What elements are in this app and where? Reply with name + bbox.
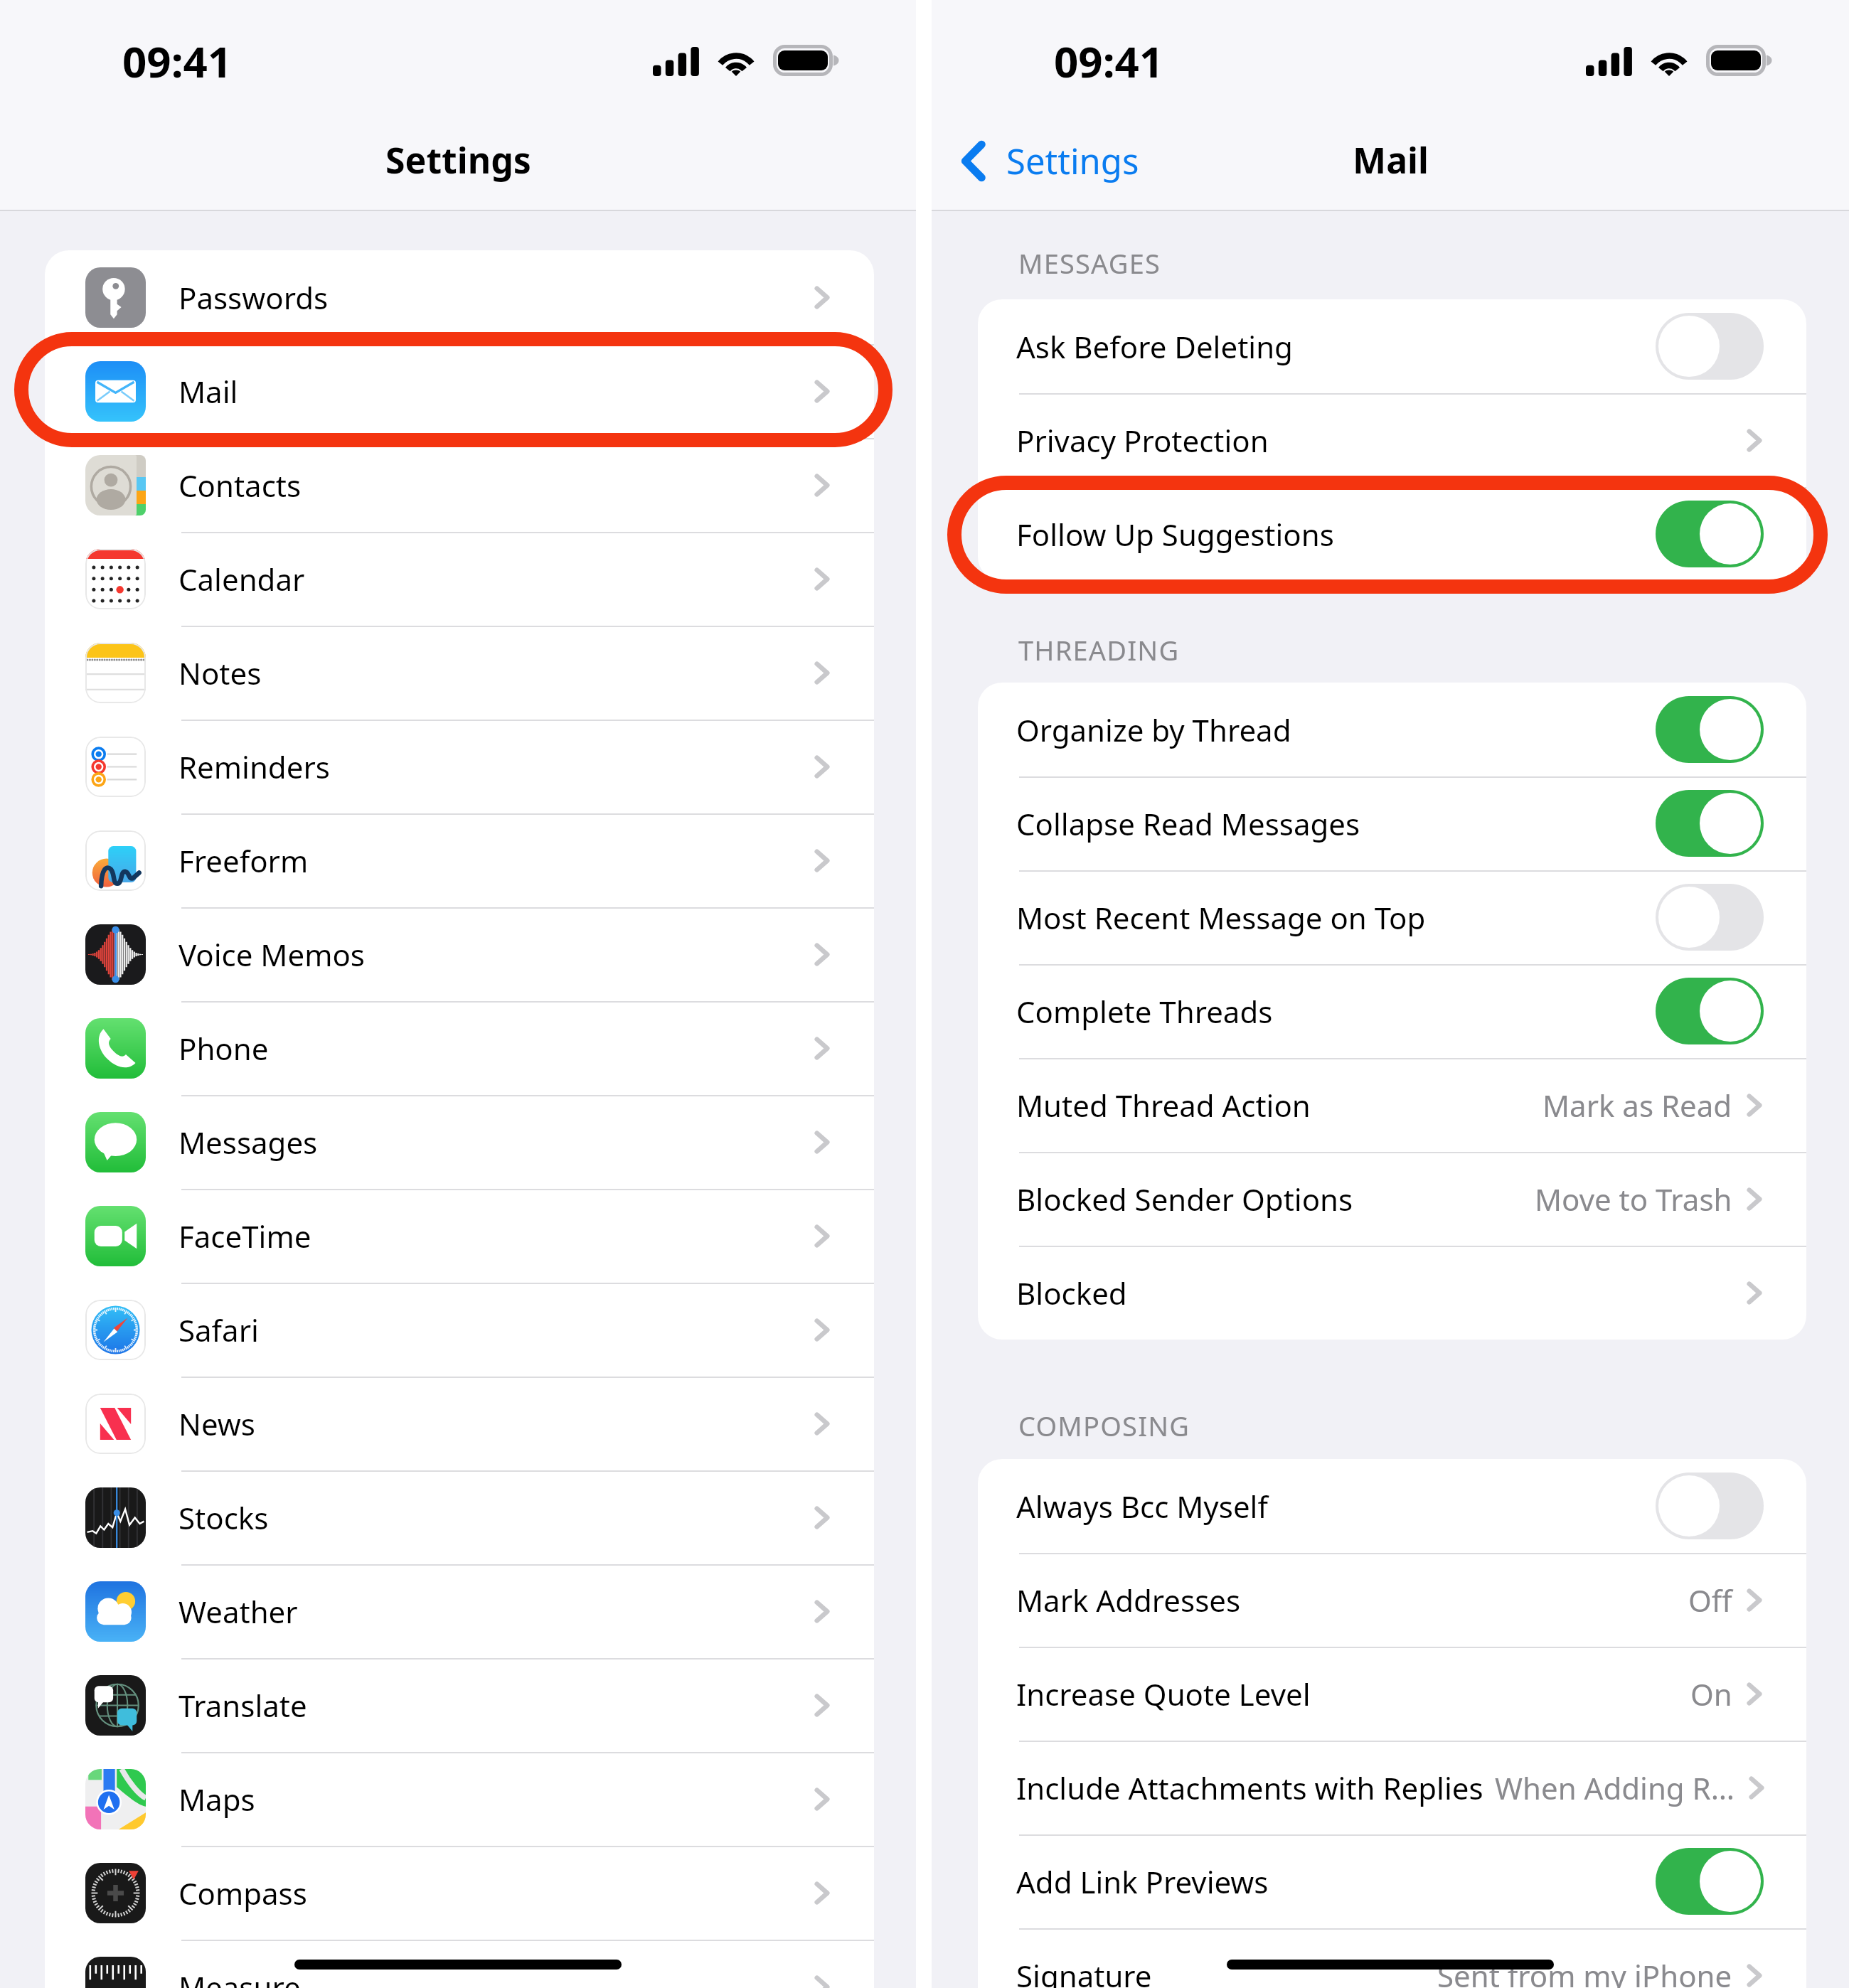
- button[interactable]: Blocked Sender Options: [978, 1152, 1806, 1246]
- staticText: Safari: [178, 1310, 814, 1350]
- button[interactable]: Toggle off: [1656, 313, 1764, 380]
- staticText: Mail: [178, 371, 814, 412]
- other: Cellular signal: [1586, 47, 1632, 76]
- button[interactable]: Collapse Read Messages: [978, 776, 1806, 870]
- button[interactable]: Mail: [45, 344, 874, 438]
- staticText: When Adding R…: [1495, 1768, 1735, 1808]
- staticText: Privacy Protection: [1016, 420, 1269, 461]
- staticText: Voice Memos: [178, 934, 814, 975]
- button[interactable]: Privacy Protection: [978, 393, 1806, 487]
- staticText: 09:41: [122, 32, 233, 90]
- button[interactable]: Notes: [45, 626, 874, 720]
- button[interactable]: Toggle off: [1656, 884, 1764, 951]
- other: Wi-Fi: [715, 45, 757, 76]
- button[interactable]: Blocked: [978, 1246, 1806, 1340]
- button[interactable]: Weather: [45, 1564, 874, 1658]
- button[interactable]: Maps: [45, 1752, 874, 1846]
- button[interactable]: Complete Threads: [978, 964, 1806, 1058]
- button[interactable]: Toggle off: [1656, 1473, 1764, 1539]
- staticText: Organize by Thread: [1016, 710, 1656, 750]
- staticText: COMPOSING: [1018, 1407, 1190, 1444]
- staticText: 09:41: [1054, 32, 1164, 90]
- staticText: Mark Addresses: [1016, 1580, 1241, 1620]
- staticText: Mail: [1353, 136, 1429, 184]
- button[interactable]: Most Recent Message on Top: [978, 870, 1806, 964]
- staticText: Settings: [385, 136, 531, 184]
- staticText: Maps: [178, 1779, 814, 1819]
- staticText: Translate: [178, 1685, 814, 1726]
- staticText: Increase Quote Level: [1016, 1674, 1311, 1714]
- button[interactable]: Translate: [45, 1658, 874, 1752]
- button[interactable]: Voice Memos: [45, 907, 874, 1001]
- staticText: Muted Thread Action: [1016, 1085, 1311, 1126]
- staticText: Freeform: [178, 840, 814, 881]
- button[interactable]: Follow Up Suggestions: [978, 487, 1806, 581]
- button[interactable]: Calendar: [45, 532, 874, 626]
- other: Battery: [1706, 45, 1772, 76]
- staticText: Compass: [178, 1873, 814, 1913]
- staticText: Complete Threads: [1016, 991, 1656, 1032]
- button[interactable]: Freeform: [45, 813, 874, 907]
- staticText: Blocked Sender Options: [1016, 1179, 1353, 1219]
- button[interactable]: Safari: [45, 1283, 874, 1377]
- staticText: Phone: [178, 1028, 814, 1069]
- other: Cellular signal: [653, 47, 699, 76]
- staticText: MESSAGES: [1018, 245, 1161, 282]
- staticText: Contacts: [178, 465, 814, 506]
- button[interactable]: Include Attachments with Replies: [978, 1741, 1806, 1834]
- staticText: Notes: [178, 653, 814, 693]
- staticText: Always Bcc Myself: [1016, 1486, 1656, 1527]
- staticText: Ask Before Deleting: [1016, 326, 1656, 367]
- button[interactable]: Messages: [45, 1095, 874, 1189]
- staticText: Mark as Read: [1542, 1085, 1732, 1126]
- staticText: Reminders: [178, 747, 814, 787]
- staticText: News: [178, 1404, 814, 1444]
- button[interactable]: Muted Thread Action: [978, 1058, 1806, 1152]
- button[interactable]: Reminders: [45, 720, 874, 813]
- staticText: Weather: [178, 1591, 814, 1632]
- other: Battery: [773, 45, 839, 76]
- staticText: Passwords: [178, 277, 814, 318]
- staticText: Blocked: [1016, 1273, 1127, 1313]
- button[interactable]: Toggle on: [1656, 1848, 1764, 1915]
- button[interactable]: News: [45, 1377, 874, 1470]
- staticText: Add Link Previews: [1016, 1861, 1656, 1902]
- staticText: Include Attachments with Replies: [1016, 1768, 1483, 1808]
- staticText: Measure: [178, 1967, 814, 1988]
- staticText: THREADING: [1018, 631, 1180, 668]
- staticText: Most Recent Message on Top: [1016, 897, 1656, 938]
- staticText: FaceTime: [178, 1216, 814, 1256]
- button[interactable]: Toggle on: [1656, 501, 1764, 567]
- button[interactable]: Stocks: [45, 1470, 874, 1564]
- button[interactable]: Ask Before Deleting: [978, 299, 1806, 393]
- button[interactable]: Add Link Previews: [978, 1834, 1806, 1928]
- staticText: Off: [1688, 1580, 1732, 1620]
- staticText: Sent from my iPhone: [1437, 1955, 1732, 1988]
- button[interactable]: Settings: [962, 137, 1139, 185]
- button[interactable]: Toggle on: [1656, 790, 1764, 857]
- button[interactable]: Always Bcc Myself: [978, 1459, 1806, 1553]
- staticText: Follow Up Suggestions: [1016, 514, 1656, 555]
- button[interactable]: Organize by Thread: [978, 683, 1806, 776]
- button[interactable]: Contacts: [45, 438, 874, 532]
- button[interactable]: Phone: [45, 1001, 874, 1095]
- button[interactable]: Passwords: [45, 250, 874, 344]
- button[interactable]: Mark Addresses: [978, 1553, 1806, 1647]
- staticText: Messages: [178, 1122, 814, 1163]
- staticText: Settings: [1006, 137, 1139, 185]
- staticText: On: [1690, 1674, 1732, 1714]
- button[interactable]: Signature: [978, 1928, 1806, 1988]
- button[interactable]: Toggle on: [1656, 696, 1764, 763]
- button[interactable]: FaceTime: [45, 1189, 874, 1283]
- button[interactable]: Toggle on: [1656, 978, 1764, 1044]
- button[interactable]: Increase Quote Level: [978, 1647, 1806, 1741]
- staticText: Move to Trash: [1535, 1179, 1732, 1219]
- button[interactable]: Measure: [45, 1940, 874, 1988]
- staticText: Calendar: [178, 559, 814, 599]
- staticText: Signature: [1016, 1955, 1152, 1988]
- staticText: Collapse Read Messages: [1016, 803, 1656, 844]
- other: Wi-Fi: [1648, 45, 1690, 76]
- staticText: Stocks: [178, 1497, 814, 1538]
- button[interactable]: Compass: [45, 1846, 874, 1940]
